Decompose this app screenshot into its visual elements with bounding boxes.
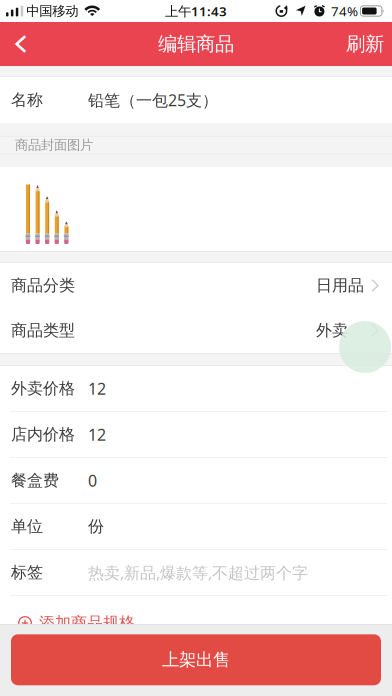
button[interactable]: 单位 bbox=[0, 504, 392, 549]
button[interactable]: 店内价格 bbox=[0, 412, 392, 457]
staticText: 编辑商品 bbox=[158, 32, 234, 56]
staticText: 份 bbox=[88, 517, 104, 536]
staticText: 标签 bbox=[11, 563, 43, 582]
staticText: 上架出售 bbox=[162, 649, 230, 670]
button[interactable]: 悬浮球 bbox=[339, 321, 391, 373]
button[interactable]: 外卖价格 bbox=[0, 366, 392, 411]
staticText: 12 bbox=[88, 424, 106, 445]
staticText: 店内价格 bbox=[11, 425, 75, 444]
staticText: 添加商品规格 bbox=[39, 613, 135, 633]
staticText: 74% bbox=[331, 2, 358, 20]
staticText: 12 bbox=[88, 378, 106, 399]
staticText: 名称 bbox=[11, 90, 43, 110]
staticText: 日用品 bbox=[316, 276, 364, 295]
button[interactable]: 商品类型 bbox=[0, 308, 392, 353]
button[interactable]: 餐盒费 bbox=[0, 458, 392, 503]
staticText: 餐盒费 bbox=[11, 471, 59, 490]
button[interactable]: 商品分类 bbox=[0, 263, 392, 308]
staticText: 铅笔（一包25支） bbox=[88, 89, 218, 111]
staticText: 商品分类 bbox=[11, 276, 75, 295]
staticText: 外卖 bbox=[316, 321, 348, 340]
staticText: 0 bbox=[88, 470, 97, 491]
button[interactable]: 标签 bbox=[0, 550, 392, 595]
staticText: 上午11:43 bbox=[165, 2, 227, 20]
button[interactable]: 商品封面图片 bbox=[0, 167, 392, 251]
staticText: 刷新 bbox=[346, 32, 384, 56]
button[interactable]: 上架出售 bbox=[11, 634, 381, 685]
button[interactable]: 添加商品规格 bbox=[0, 596, 392, 641]
staticText: 热卖,新品,爆款等,不超过两个字 bbox=[88, 562, 308, 583]
staticText: 商品封面图片 bbox=[15, 137, 93, 153]
button[interactable]: 返回 bbox=[0, 22, 44, 66]
staticText: 商品类型 bbox=[11, 321, 75, 340]
staticText: 中国移动 bbox=[26, 3, 78, 19]
staticText: 外卖价格 bbox=[11, 379, 75, 398]
staticText: 单位 bbox=[11, 517, 43, 536]
button[interactable]: 名称 bbox=[0, 77, 392, 123]
button[interactable]: 刷新 bbox=[346, 22, 392, 66]
